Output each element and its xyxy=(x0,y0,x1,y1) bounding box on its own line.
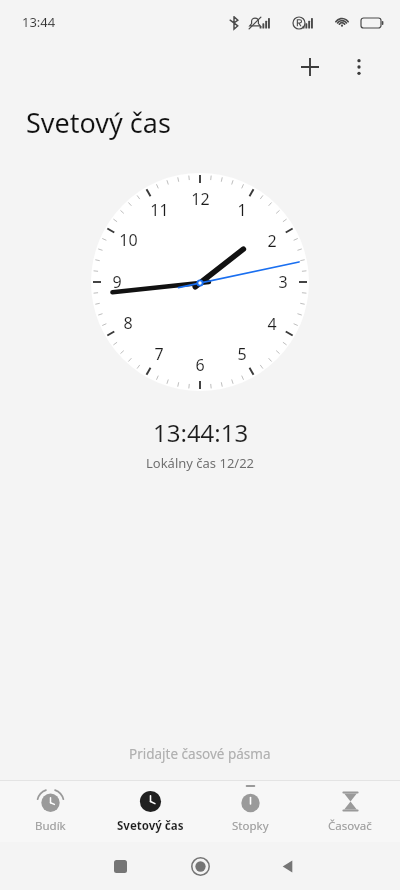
staticText: Budík xyxy=(35,818,66,834)
staticText: 10 xyxy=(119,229,138,251)
button[interactable]: Stopky xyxy=(200,781,300,842)
button[interactable]: Budík xyxy=(0,781,100,842)
staticText: 13:44:13 xyxy=(153,416,249,449)
staticText: 4 xyxy=(267,313,277,335)
staticText: 8 xyxy=(123,312,133,334)
staticText: Časovač xyxy=(328,818,372,834)
staticText: Stopky xyxy=(232,818,269,834)
button[interactable]: Home xyxy=(176,842,224,890)
button[interactable]: Svetový čas xyxy=(100,781,200,842)
button[interactable]: Add city xyxy=(288,45,332,89)
staticText: 1 xyxy=(237,199,247,221)
staticText: 7 xyxy=(154,343,164,365)
staticText: 9 xyxy=(112,271,122,293)
staticText: Svetový čas xyxy=(26,104,171,141)
staticText: 2 xyxy=(267,230,277,252)
staticText: Svetový čas xyxy=(117,818,184,834)
button[interactable]: Recent apps xyxy=(96,842,144,890)
staticText: Lokálny čas 12/22 xyxy=(146,454,255,472)
staticText: 12 xyxy=(191,188,210,210)
staticText: 3 xyxy=(278,271,288,293)
staticText: Pridajte časové pásma xyxy=(129,745,271,763)
staticText: 11 xyxy=(150,199,169,221)
button[interactable]: Časovač xyxy=(300,781,400,842)
button[interactable]: Back xyxy=(263,842,311,890)
staticText: 5 xyxy=(237,343,247,365)
staticText: 13:44 xyxy=(22,13,56,31)
staticText: 6 xyxy=(195,354,205,376)
button[interactable]: More options xyxy=(337,45,381,89)
